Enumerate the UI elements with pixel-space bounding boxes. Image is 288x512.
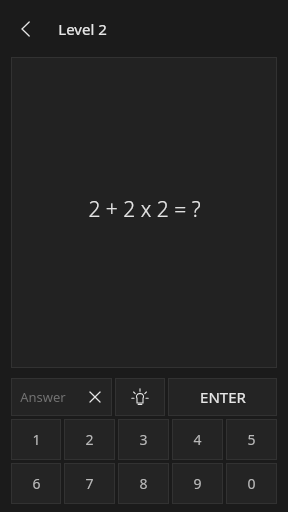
- staticText: 3: [139, 430, 148, 449]
- staticText: ENTER: [200, 387, 246, 407]
- button[interactable]: 3: [118, 419, 169, 460]
- button[interactable]: Hint: [115, 378, 165, 416]
- button[interactable]: 8: [118, 463, 169, 504]
- button[interactable]: 0: [226, 463, 277, 504]
- staticText: 7: [85, 474, 94, 493]
- button[interactable]: 1: [11, 419, 61, 460]
- staticText: Level 2: [58, 19, 107, 39]
- staticText: 2 + 2 x 2 = ?: [88, 195, 201, 224]
- staticText: 2: [85, 430, 94, 449]
- button[interactable]: 7: [64, 463, 115, 504]
- button[interactable]: Back: [6, 9, 46, 49]
- button[interactable]: ENTER: [168, 378, 277, 416]
- staticText: Answer: [20, 388, 66, 406]
- staticText: 8: [139, 474, 148, 493]
- button[interactable]: 4: [172, 419, 223, 460]
- staticText: 9: [193, 474, 202, 493]
- staticText: 1: [32, 430, 41, 449]
- button[interactable]: 6: [11, 463, 61, 504]
- button[interactable]: 5: [226, 419, 277, 460]
- staticText: 4: [193, 430, 202, 449]
- staticText: 6: [32, 474, 41, 493]
- staticText: 5: [247, 430, 256, 449]
- button[interactable]: Clear answer: [85, 387, 105, 407]
- button[interactable]: 2: [64, 419, 115, 460]
- button[interactable]: 9: [172, 463, 223, 504]
- staticText: 0: [247, 474, 256, 493]
- button[interactable]: Answer: [11, 378, 112, 416]
